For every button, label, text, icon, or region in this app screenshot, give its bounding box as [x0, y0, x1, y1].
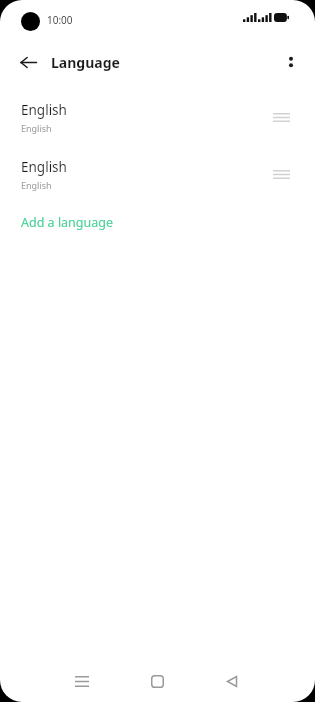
button[interactable]: Reorder	[268, 104, 294, 130]
staticText: 10:00	[47, 13, 73, 27]
button[interactable]: More options	[275, 46, 307, 78]
button[interactable]: Recent apps	[64, 663, 100, 699]
staticText: English	[21, 122, 52, 134]
button[interactable]: Back	[214, 663, 250, 699]
button[interactable]: Add a language	[0, 210, 315, 234]
button[interactable]: English	[0, 95, 315, 139]
staticText: English	[21, 101, 67, 119]
button[interactable]: Reorder	[268, 161, 294, 187]
button[interactable]: English	[0, 152, 315, 196]
staticText: Add a language	[21, 214, 114, 231]
staticText: English	[21, 158, 67, 176]
staticText: Language	[51, 53, 120, 72]
staticText: English	[21, 179, 52, 191]
button[interactable]: Home	[139, 663, 175, 699]
button[interactable]: Back	[12, 46, 44, 78]
